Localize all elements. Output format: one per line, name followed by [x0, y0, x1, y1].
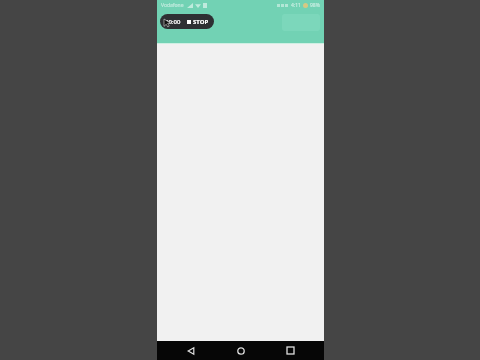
staticText: 98%	[310, 2, 320, 9]
button[interactable]: Home	[226, 341, 256, 360]
staticText: Vodafone	[161, 2, 184, 9]
button[interactable]: 00:00	[160, 14, 214, 29]
staticText: 00:00	[165, 18, 181, 26]
button[interactable]: Recent apps	[275, 341, 305, 360]
button[interactable]: Back	[176, 341, 206, 360]
staticText: 4:11	[291, 2, 301, 9]
staticText: STOP	[193, 18, 209, 26]
